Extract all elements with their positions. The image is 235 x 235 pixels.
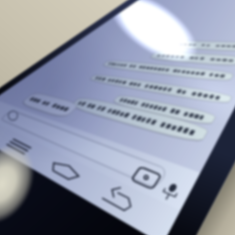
button[interactable]: Back xyxy=(104,187,134,213)
button[interactable]: Recent apps xyxy=(5,134,32,158)
button[interactable]: Home xyxy=(48,157,81,184)
button[interactable]: Emoji xyxy=(3,105,24,126)
button[interactable]: Message input field xyxy=(26,110,146,144)
button[interactable]: Voice message xyxy=(158,180,184,205)
button[interactable]: Camera xyxy=(133,164,160,190)
